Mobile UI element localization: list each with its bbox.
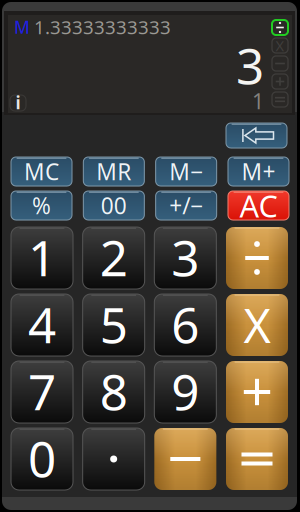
button[interactable]: 8	[83, 361, 145, 423]
staticText: M+	[241, 156, 275, 186]
staticText: 0	[28, 425, 56, 491]
button[interactable]: Equals	[226, 428, 288, 490]
button[interactable]: AC	[228, 191, 289, 220]
staticText: 1	[28, 224, 56, 290]
staticText: X	[275, 36, 284, 55]
button[interactable]: MR	[83, 157, 144, 186]
staticText: 3	[236, 32, 264, 98]
staticText: 1.33333333333	[34, 15, 171, 39]
button[interactable]: 3	[154, 227, 216, 289]
button[interactable]: 2	[83, 227, 145, 289]
button[interactable]: +/−	[156, 191, 217, 220]
button[interactable]: M−	[156, 157, 217, 186]
staticText: 6	[171, 291, 199, 357]
staticText: i	[15, 91, 20, 114]
staticText: 7	[28, 358, 56, 424]
staticText: 4	[28, 291, 56, 357]
staticText: MC	[24, 156, 59, 186]
button[interactable]: Add	[226, 361, 288, 423]
button[interactable]: M+	[228, 157, 289, 186]
button[interactable]: Decimal point	[83, 428, 145, 490]
staticText: 2	[100, 224, 128, 290]
staticText: MR	[96, 156, 131, 186]
button[interactable]: Backspace	[226, 123, 287, 148]
staticText: M−	[169, 156, 203, 186]
button[interactable]: 7	[11, 361, 73, 423]
staticText: X	[243, 294, 270, 356]
staticText: 1	[252, 87, 264, 115]
button[interactable]: 9	[154, 361, 216, 423]
staticText: M	[14, 15, 30, 38]
button[interactable]: Divide	[226, 227, 288, 289]
button[interactable]: MC	[11, 157, 72, 186]
button[interactable]: Info	[10, 95, 26, 111]
staticText: 3	[171, 224, 199, 290]
staticText: %	[32, 190, 51, 220]
button[interactable]: 6	[154, 294, 216, 356]
staticText: 5	[100, 291, 128, 357]
staticText: +/−	[169, 190, 203, 220]
button[interactable]: 1	[11, 227, 73, 289]
button[interactable]: Subtract	[154, 428, 216, 490]
staticText: 9	[171, 358, 199, 424]
button[interactable]: Multiply	[226, 294, 288, 356]
staticText: 00	[101, 190, 127, 220]
button[interactable]: 00	[83, 191, 144, 220]
button[interactable]: 4	[11, 294, 73, 356]
staticText: 8	[100, 358, 128, 424]
button[interactable]: %	[11, 191, 72, 220]
staticText: AC	[239, 185, 277, 226]
button[interactable]: 5	[83, 294, 145, 356]
button[interactable]: 0	[11, 428, 73, 490]
